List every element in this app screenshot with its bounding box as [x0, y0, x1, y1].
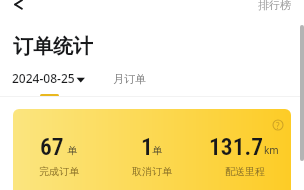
staticText: 2024-08-25 — [12, 70, 75, 86]
button[interactable]: Help — [13, 109, 291, 190]
staticText: 1 — [141, 133, 153, 161]
staticText: 67 — [40, 133, 64, 161]
button[interactable]: Back — [8, 0, 28, 14]
staticText: 月订单 — [113, 72, 146, 86]
staticText: 配送里程 — [225, 165, 265, 178]
button[interactable]: Help — [270, 117, 286, 133]
staticText: ? — [276, 120, 280, 131]
staticText: 131.7 — [209, 133, 263, 161]
button[interactable]: 排行榜 — [242, 0, 304, 16]
staticText: 单 — [67, 144, 77, 157]
staticText: 排行榜 — [258, 0, 291, 12]
button[interactable]: 月订单 — [99, 68, 160, 96]
staticText: 单 — [152, 144, 162, 157]
button[interactable]: 2024-08-25 — [3, 66, 94, 96]
staticText: km — [264, 143, 279, 157]
staticText: 订单统计 — [13, 34, 93, 59]
staticText: 取消订单 — [132, 165, 172, 178]
staticText: 完成订单 — [39, 165, 79, 178]
